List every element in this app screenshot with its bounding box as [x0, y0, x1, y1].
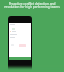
staticText: Proactive conflict detection and resolut…	[2, 2, 62, 9]
